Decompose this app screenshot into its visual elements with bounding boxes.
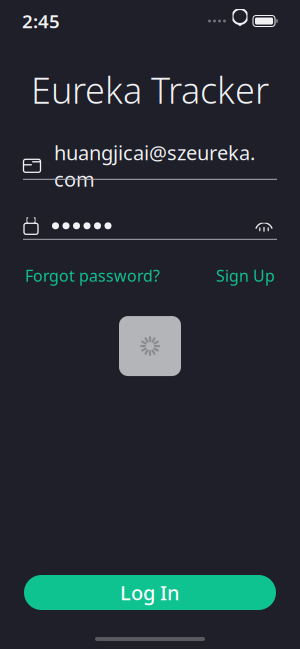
staticText: Eureka Tracker <box>31 66 269 114</box>
staticText: Log In <box>120 579 180 606</box>
staticText: 2:45 <box>22 9 60 33</box>
button[interactable]: Sign Up <box>216 265 275 286</box>
staticText: Forgot password? <box>25 265 160 286</box>
button[interactable]: Log In <box>24 575 276 610</box>
staticText: Sign Up <box>216 265 275 286</box>
button[interactable]: Forgot password? <box>25 265 160 286</box>
staticText: huangjicai@szeureka.com <box>54 139 255 192</box>
button[interactable]: Show password <box>251 215 277 237</box>
